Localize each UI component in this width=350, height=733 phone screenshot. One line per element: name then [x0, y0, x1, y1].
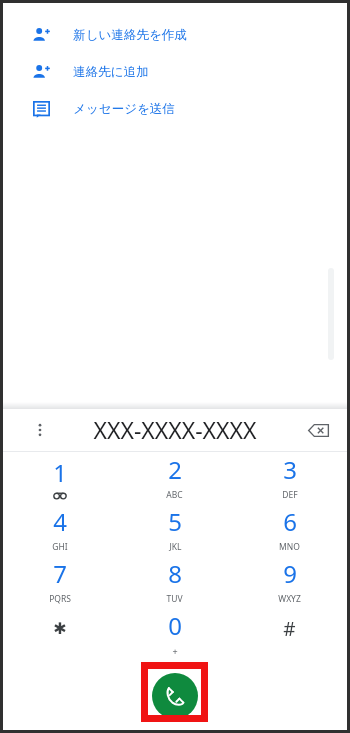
staticText: 9 — [283, 557, 297, 590]
staticText: TUV — [166, 593, 183, 605]
button[interactable]: More options — [25, 415, 55, 445]
button[interactable]: 8 — [117, 556, 232, 608]
staticText: PQRS — [49, 593, 71, 605]
button[interactable]: 9 — [232, 556, 347, 608]
button[interactable]: Call — [152, 673, 198, 719]
staticText: JKL — [169, 541, 182, 553]
staticText: DEF — [282, 489, 298, 501]
button[interactable]: 新しい連絡先を作成 — [3, 16, 347, 53]
staticText: 1 — [53, 456, 67, 489]
staticText: 0 — [168, 609, 182, 642]
staticText: メッセージを送信 — [73, 101, 175, 117]
staticText: 4 — [53, 505, 67, 538]
staticText: 6 — [283, 505, 297, 538]
staticText: # — [283, 616, 296, 642]
staticText: + — [172, 645, 178, 657]
button[interactable]: 5 — [117, 504, 232, 556]
staticText: 8 — [168, 557, 182, 590]
staticText: MNO — [279, 541, 300, 553]
staticText: XXX-XXXX-XXXX — [93, 414, 257, 445]
staticText: 連絡先に追加 — [73, 64, 149, 80]
button[interactable]: 3 — [232, 452, 347, 504]
button[interactable]: 4 — [3, 504, 117, 556]
staticText: GHI — [52, 541, 68, 553]
staticText: 3 — [283, 453, 297, 486]
staticText: 7 — [53, 557, 67, 590]
staticText: 5 — [168, 505, 182, 538]
staticText: WXYZ — [278, 593, 301, 605]
button[interactable]: 1 — [3, 452, 117, 504]
button[interactable]: 6 — [232, 504, 347, 556]
button[interactable]: ✱ — [3, 608, 117, 660]
button[interactable]: 連絡先に追加 — [3, 53, 347, 90]
staticText: ABC — [166, 489, 183, 501]
button[interactable]: 7 — [3, 556, 117, 608]
button[interactable]: 2 — [117, 452, 232, 504]
staticText: ✱ — [53, 619, 67, 638]
button[interactable]: メッセージを送信 — [3, 90, 347, 127]
button[interactable]: 0 — [117, 608, 232, 660]
button[interactable]: Backspace — [301, 413, 335, 447]
staticText: 新しい連絡先を作成 — [73, 27, 187, 43]
button[interactable]: # — [232, 608, 347, 660]
staticText: 2 — [168, 453, 182, 486]
